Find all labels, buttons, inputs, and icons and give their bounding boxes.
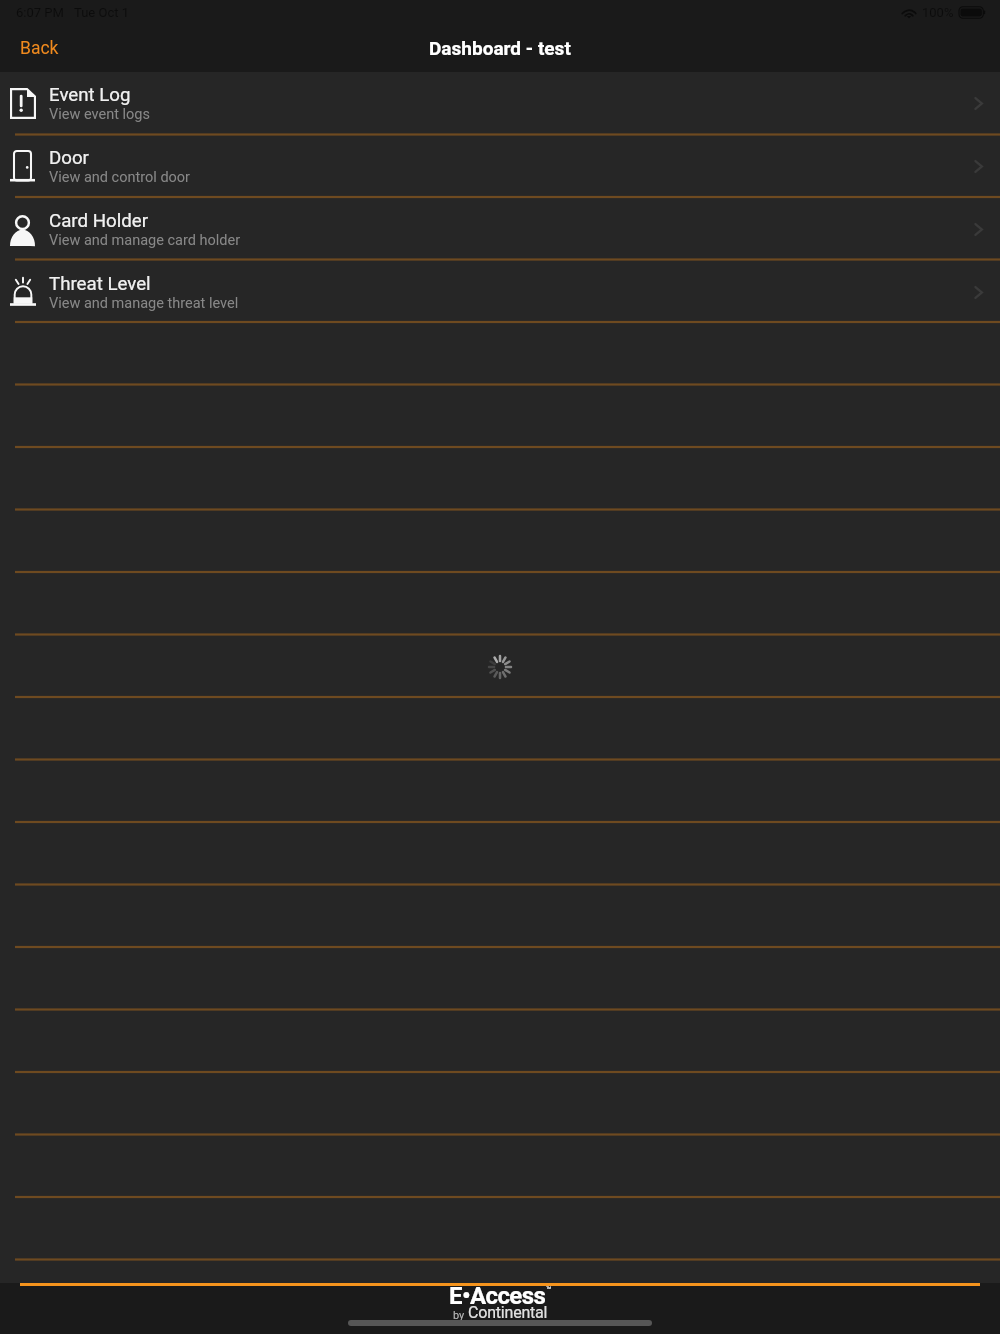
button[interactable]: Card Holder — [0, 198, 1000, 261]
staticText: by — [453, 1309, 468, 1322]
staticText: Door — [49, 147, 89, 169]
button[interactable]: Open Card Holder — [956, 198, 1000, 261]
staticText: ™ — [546, 1285, 552, 1296]
button[interactable]: Threat Level — [0, 261, 1000, 324]
staticText: View event logs — [49, 106, 150, 123]
button[interactable]: Event Log — [0, 72, 1000, 135]
staticText: Continental — [468, 1303, 548, 1322]
button[interactable]: Door — [0, 135, 1000, 198]
button[interactable]: Back — [10, 32, 69, 65]
staticText: Event Log — [49, 84, 131, 106]
staticText: E•Access — [449, 1282, 546, 1310]
button[interactable]: Open Threat Level — [956, 261, 1000, 324]
staticText: Back — [20, 38, 59, 59]
staticText: Tue Oct 1 — [74, 5, 129, 20]
staticText: Dashboard - test — [429, 37, 571, 59]
staticText: View and control door — [49, 169, 191, 186]
staticText: 100% — [922, 5, 954, 20]
button[interactable]: Open Event Log — [956, 72, 1000, 135]
button[interactable]: Open Door — [956, 135, 1000, 198]
staticText: View and manage threat level — [49, 295, 239, 312]
staticText: View and manage card holder — [49, 232, 241, 249]
staticText: 6:07 PM — [16, 5, 64, 20]
staticText: Threat Level — [49, 273, 151, 295]
staticText: Card Holder — [49, 210, 148, 232]
